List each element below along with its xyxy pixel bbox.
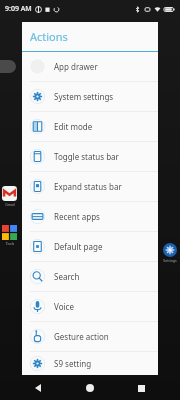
staticText: Actions xyxy=(30,29,68,44)
staticText: Voice xyxy=(54,301,74,312)
staticText: Edit mode xyxy=(54,121,93,132)
button[interactable]: Gesture action xyxy=(22,322,158,351)
button[interactable]: Home xyxy=(78,376,102,400)
button[interactable]: Back xyxy=(27,376,51,400)
staticText: Gmail xyxy=(1,202,19,207)
button[interactable]: Search xyxy=(22,262,158,291)
staticText: Expand status bar xyxy=(54,181,122,192)
staticText: S9 setting xyxy=(54,358,92,369)
staticText: Gesture action xyxy=(54,331,109,342)
button[interactable]: Default page xyxy=(22,232,158,261)
staticText: Settings xyxy=(160,258,180,263)
staticText: Toggle status bar xyxy=(54,151,119,162)
staticText: Tools xyxy=(1,241,19,246)
staticText: System settings xyxy=(54,91,114,102)
button[interactable]: Toggle status bar xyxy=(22,142,158,171)
staticText: Search xyxy=(54,271,80,282)
button[interactable]: Recent apps xyxy=(22,202,158,231)
button[interactable]: Expand status bar xyxy=(22,172,158,201)
staticText: Recent apps xyxy=(54,211,100,222)
button[interactable]: Edit mode xyxy=(22,112,158,141)
button[interactable]: App drawer xyxy=(22,52,158,81)
staticText: App drawer xyxy=(54,61,98,72)
button[interactable]: Voice xyxy=(22,292,158,321)
button[interactable]: S9 setting xyxy=(22,352,158,375)
button[interactable]: System settings xyxy=(22,82,158,111)
staticText: 9:09 AM xyxy=(5,4,32,14)
button[interactable]: Recents xyxy=(129,376,153,400)
staticText: Default page xyxy=(54,241,103,252)
